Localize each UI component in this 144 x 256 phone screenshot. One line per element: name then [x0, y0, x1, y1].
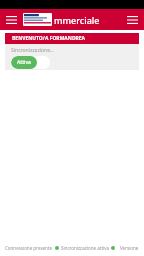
staticText: Sincronizzazione...: [11, 47, 54, 54]
staticText: Versione: [120, 245, 139, 251]
button[interactable]: BENVENUTO/A FORMANDREA: [5, 33, 139, 44]
staticText: mmerciale Fond: [54, 14, 121, 26]
staticText: Attiva: [17, 59, 31, 66]
button[interactable]: Logo: [23, 13, 52, 26]
button[interactable]: Menu: [0, 9, 23, 30]
button[interactable]: Attiva: [11, 56, 50, 69]
staticText: BENVENUTO/A FORMANDREA: [12, 35, 86, 42]
staticText: Connessione presente: [5, 245, 53, 251]
button[interactable]: Options: [121, 9, 144, 30]
staticText: Sincronizzazione attiva: [61, 245, 109, 251]
